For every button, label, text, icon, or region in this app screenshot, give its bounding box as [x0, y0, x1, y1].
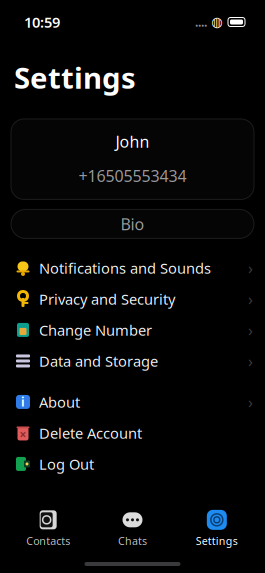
staticText: .... — [195, 14, 207, 30]
staticText: Log Out — [39, 454, 94, 474]
staticText: Privacy and Security — [39, 289, 175, 309]
staticText: › — [248, 350, 253, 371]
staticText: 10:59 — [24, 12, 60, 32]
staticText: × — [19, 426, 26, 442]
staticText: › — [248, 319, 253, 340]
button[interactable]: Log Out — [0, 448, 265, 479]
staticText: Change Number — [39, 320, 152, 340]
staticText: Notifications and Sounds — [39, 258, 211, 278]
button[interactable]: Change Number — [0, 314, 265, 345]
staticText: +16505553434 — [78, 165, 186, 186]
staticText: Contacts — [26, 534, 70, 548]
staticText: About — [39, 392, 80, 412]
staticText: Data and Storage — [39, 351, 158, 371]
button[interactable]: Notifications and Sounds — [0, 252, 265, 283]
staticText: i — [21, 394, 25, 410]
button[interactable]: Bio — [11, 209, 254, 238]
staticText: ◍ — [211, 14, 223, 29]
staticText: › — [248, 391, 253, 412]
staticText: › — [248, 257, 253, 278]
button[interactable]: Chats — [90, 505, 175, 552]
staticText: Settings — [14, 58, 136, 97]
staticText: › — [248, 288, 253, 309]
button[interactable]: Privacy and Security — [0, 283, 265, 314]
button[interactable]: Data and Storage — [0, 345, 265, 376]
staticText: Settings — [196, 534, 238, 548]
staticText: John — [115, 131, 149, 152]
staticText: Chats — [118, 534, 147, 548]
button[interactable]: Settings — [175, 505, 259, 552]
button[interactable]: × — [0, 417, 265, 448]
button[interactable]: i — [0, 386, 265, 417]
staticText: Delete Account — [39, 423, 142, 443]
staticText: Bio — [120, 213, 144, 234]
button[interactable]: Contacts — [6, 505, 90, 552]
